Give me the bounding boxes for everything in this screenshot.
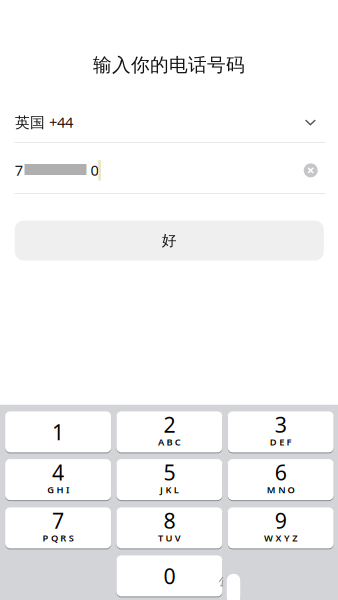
staticText: W	[264, 532, 273, 544]
button[interactable]: 3	[228, 411, 334, 452]
button[interactable]: 6	[228, 459, 334, 500]
staticText: 7	[52, 506, 64, 534]
button[interactable]: 7	[5, 507, 111, 548]
button[interactable]: 9	[228, 507, 334, 548]
staticText: 0	[163, 562, 175, 590]
staticText: 7	[15, 160, 23, 180]
staticText: T	[158, 532, 163, 544]
staticText: 英国 +44	[15, 112, 73, 132]
staticText: G	[47, 483, 54, 496]
button[interactable]: Clear text	[304, 163, 318, 177]
button[interactable]: 5	[116, 459, 222, 500]
staticText: X	[275, 532, 281, 544]
button[interactable]: 0	[116, 555, 222, 596]
staticText: 8	[163, 506, 175, 534]
staticText: R	[60, 532, 66, 544]
staticText: 2	[163, 410, 175, 438]
staticText: C	[175, 436, 181, 448]
staticText: D	[270, 436, 277, 448]
staticText: 6	[275, 458, 287, 486]
staticText: 9	[275, 506, 287, 534]
staticText: A	[158, 436, 164, 448]
staticText: 0	[90, 160, 98, 180]
staticText: 4	[52, 458, 64, 486]
staticText: 5	[163, 458, 175, 486]
staticText: E	[279, 436, 284, 448]
staticText: 3	[275, 410, 287, 438]
staticText: O	[288, 483, 295, 496]
button[interactable]: 8	[116, 507, 222, 548]
staticText: V	[175, 532, 181, 544]
staticText: Q	[51, 532, 58, 544]
staticText: F	[287, 436, 292, 448]
staticText: H	[57, 483, 64, 496]
staticText: 好	[162, 231, 177, 249]
staticText: I	[66, 483, 69, 496]
staticText: Y	[284, 532, 290, 544]
staticText: U	[165, 532, 172, 544]
staticText: M	[267, 483, 276, 496]
staticText: Z	[292, 532, 297, 544]
staticText: P	[42, 532, 48, 544]
staticText: B	[166, 436, 172, 448]
staticText: 1	[52, 418, 64, 446]
staticText: L	[174, 483, 179, 496]
button[interactable]: 好	[15, 220, 324, 260]
button[interactable]: 2	[116, 411, 222, 452]
staticText: 输入你的电话号码	[93, 53, 245, 76]
staticText: K	[165, 483, 171, 496]
staticText: N	[278, 483, 285, 496]
button[interactable]: 1	[5, 411, 111, 452]
staticText: J	[160, 483, 163, 496]
button[interactable]: 英国 +44	[14, 108, 325, 136]
button[interactable]: 4	[5, 459, 111, 500]
staticText: S	[69, 532, 74, 544]
